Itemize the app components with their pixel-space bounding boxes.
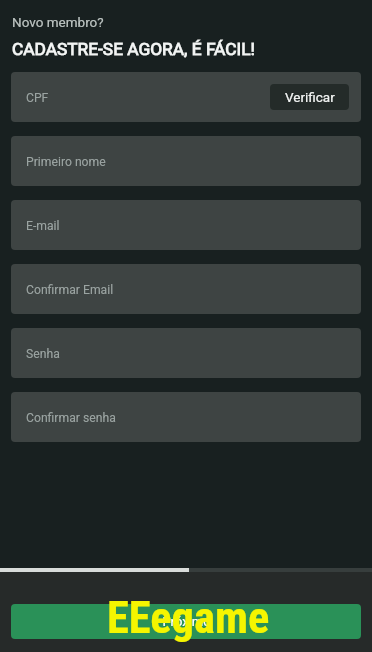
staticText: Confirmar Email xyxy=(26,283,114,297)
button[interactable]: Senha xyxy=(11,328,361,378)
staticText: CPF xyxy=(26,91,49,105)
button[interactable]: Confirmar senha xyxy=(11,392,361,442)
staticText: E-mail xyxy=(26,219,60,233)
button[interactable]: Próximo xyxy=(11,604,361,639)
button[interactable]: Verificar xyxy=(270,84,349,110)
staticText: Confirmar senha xyxy=(26,411,116,425)
staticText: Novo membro? xyxy=(12,14,104,30)
staticText: Senha xyxy=(26,347,60,361)
staticText: Primeiro nome xyxy=(26,155,106,169)
staticText: CADASTRE-SE AGORA, É FÁCIL! xyxy=(12,39,255,59)
staticText: Próximo xyxy=(162,614,211,629)
staticText: EEegame xyxy=(107,592,270,644)
button[interactable]: CPF xyxy=(11,72,361,122)
button[interactable]: E-mail xyxy=(11,200,361,250)
staticText: Verificar xyxy=(285,89,335,105)
button[interactable]: Primeiro nome xyxy=(11,136,361,186)
button[interactable]: Confirmar Email xyxy=(11,264,361,314)
